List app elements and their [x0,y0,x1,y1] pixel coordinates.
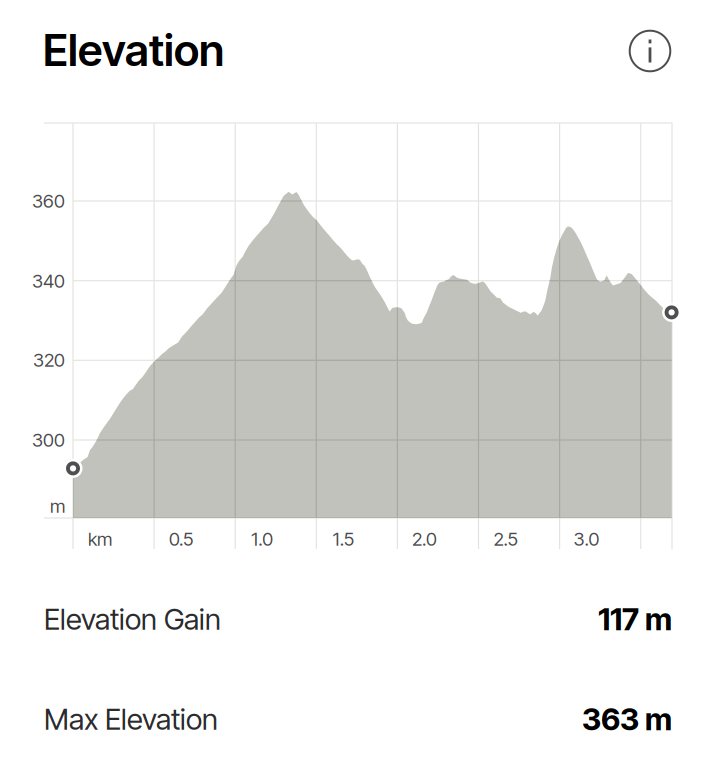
staticText: Elevation Gain [44,601,221,637]
staticText: 360 [32,190,65,212]
staticText: 1.0 [251,528,273,550]
staticText: 2.5 [493,528,517,550]
staticText: Max Elevation [44,701,218,737]
staticText: 2.0 [412,528,437,550]
staticText: m [50,495,65,517]
staticText: km [88,528,112,550]
staticText: 0.5 [169,528,193,550]
staticText: 340 [32,270,65,292]
button[interactable]: Max Elevation [0,691,716,747]
staticText: 320 [33,349,65,371]
staticText: 363 m [582,700,672,737]
button[interactable]: Info [0,0,716,768]
button[interactable]: Elevation Gain [0,591,716,647]
staticText: 1.5 [333,528,354,550]
staticText: Elevation [43,23,224,77]
staticText: 300 [32,429,65,451]
staticText: 3.0 [574,528,600,550]
staticText: 117 m [598,600,672,637]
